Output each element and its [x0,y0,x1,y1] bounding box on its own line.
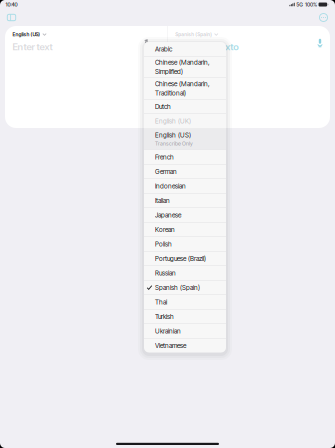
button[interactable]: Turkish [144,309,226,323]
staticText: German [155,167,177,175]
button[interactable]: French [144,150,226,164]
staticText: Introducir texto [175,41,238,53]
button[interactable]: Indonesian [144,179,226,193]
staticText: Transcribe Only [155,140,193,147]
staticText: 10:40 [5,1,17,8]
staticText: Ukrainian [155,327,181,335]
staticText: Thai [155,298,167,306]
staticText: Chinese (Mandarin, [155,80,210,88]
staticText: Korean [155,225,175,233]
staticText: Traditional) [155,89,186,97]
staticText: Spanish (Spain) [175,31,212,37]
button[interactable]: Vietnamese [144,338,226,352]
staticText: English (US) [155,131,191,139]
button[interactable]: Chinese (Mandarin, [144,78,226,99]
button[interactable]: Russian [144,266,226,280]
button[interactable]: Thai [144,295,226,309]
button[interactable]: Ukrainian [144,324,226,338]
staticText: Spanish (Spain) [155,283,200,291]
staticText: Japanese [155,211,181,219]
staticText: Polish [155,240,172,248]
staticText: Italian [155,196,170,204]
staticText: Portuguese (Brazil) [155,254,206,262]
button[interactable]: Japanese [144,208,226,222]
staticText: Enter text [12,41,52,53]
button[interactable]: Toggle Sidebar [4,10,18,24]
button[interactable]: German [144,164,226,178]
staticText: 100% [305,1,317,8]
button[interactable]: English (UK) [144,114,226,128]
button[interactable]: English (US) [12,31,47,37]
staticText: Chinese (Mandarin, [155,58,210,66]
staticText: Dutch [155,102,171,110]
button[interactable]: Korean [144,222,226,236]
staticText: French [155,153,174,161]
button[interactable]: Dutch [144,99,226,113]
staticText: English (US) [12,31,40,37]
button[interactable]: Portuguese (Brazil) [144,251,226,265]
button[interactable]: Spanish (Spain) [144,280,226,294]
staticText: Arabic [155,45,172,53]
button[interactable]: Arabic [144,42,226,56]
staticText: 5G [296,1,303,8]
staticText: Russian [155,269,176,277]
button[interactable]: Italian [144,193,226,207]
staticText: English (UK) [155,117,191,125]
button[interactable]: English (US) [144,128,226,149]
staticText: Vietnamese [155,341,186,349]
button[interactable]: More Options [316,10,330,24]
staticText: Simplified) [155,68,183,75]
staticText: Indonesian [155,182,186,190]
staticText: Turkish [155,312,174,320]
button[interactable]: Spanish (Spain) [175,31,218,37]
button[interactable]: Play Translation [317,31,330,47]
button[interactable]: Chinese (Mandarin, [144,56,226,77]
button[interactable]: Polish [144,237,226,251]
